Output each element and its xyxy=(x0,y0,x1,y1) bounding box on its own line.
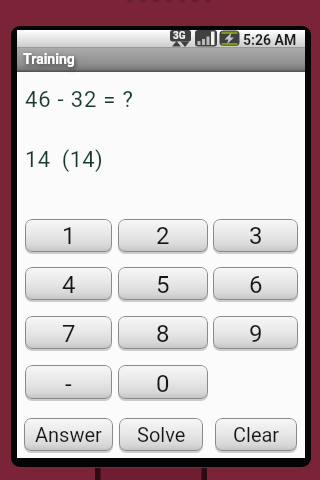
button[interactable]: 1 xyxy=(25,219,112,252)
staticText: Training xyxy=(23,51,75,67)
button[interactable]: 6 xyxy=(213,267,298,300)
staticText: 46 - 32 = ? xyxy=(25,87,134,113)
button[interactable]: Solve xyxy=(119,418,203,451)
button[interactable]: 8 xyxy=(118,316,208,349)
button[interactable]: - xyxy=(25,365,112,399)
button[interactable]: 0 xyxy=(118,365,208,399)
staticText: 9 xyxy=(249,320,263,348)
staticText: 0 xyxy=(156,370,170,398)
staticText: 3 xyxy=(249,222,263,250)
button[interactable]: 4 xyxy=(25,267,112,300)
staticText: 3G xyxy=(173,30,186,42)
staticText: - xyxy=(65,370,72,398)
staticText: 2 xyxy=(156,222,170,250)
staticText: 4 xyxy=(62,271,76,299)
staticText: 1 xyxy=(62,222,76,250)
button[interactable]: 3 xyxy=(213,219,298,252)
button[interactable]: Clear xyxy=(215,418,297,451)
staticText: Solve xyxy=(137,423,186,446)
button[interactable]: 2 xyxy=(118,219,208,252)
staticText: 7 xyxy=(62,320,76,348)
staticText: 5:26 AM xyxy=(243,32,297,48)
staticText: 14 (14) xyxy=(25,147,103,173)
staticText: Answer xyxy=(35,423,102,446)
button[interactable]: Answer xyxy=(24,418,113,451)
button[interactable]: 5 xyxy=(118,267,208,300)
staticText: 6 xyxy=(249,271,263,299)
button[interactable]: 7 xyxy=(25,316,112,349)
staticText: 8 xyxy=(156,320,170,348)
staticText: Clear xyxy=(233,423,280,446)
button[interactable]: 9 xyxy=(213,316,298,349)
staticText: 5 xyxy=(156,271,170,299)
